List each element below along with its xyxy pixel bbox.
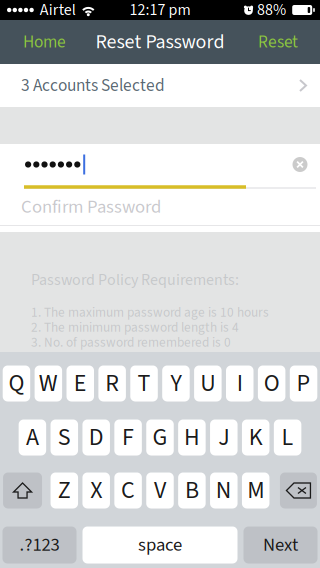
- button[interactable]: U: [194, 365, 222, 401]
- staticText: K: [249, 420, 263, 455]
- button[interactable]: Next: [243, 526, 317, 563]
- staticText: M: [247, 473, 264, 508]
- button[interactable]: space: [82, 526, 237, 563]
- staticText: Confirm Password: [21, 194, 161, 220]
- staticText: L: [282, 420, 294, 455]
- button[interactable]: Clear password: [289, 153, 311, 175]
- staticText: Z: [58, 473, 71, 508]
- button[interactable]: Z: [51, 472, 78, 508]
- button[interactable]: V: [146, 472, 174, 508]
- button[interactable]: F: [114, 419, 142, 455]
- staticText: O: [264, 366, 280, 401]
- staticText: U: [200, 366, 215, 401]
- button[interactable]: Shift: [3, 472, 42, 508]
- staticText: 1. The maximum password age is 10 hours: [31, 303, 269, 322]
- button[interactable]: G: [146, 419, 174, 455]
- button[interactable]: E: [66, 365, 94, 401]
- button[interactable]: P: [290, 365, 317, 401]
- button[interactable]: Q: [3, 365, 30, 401]
- button[interactable]: M: [242, 472, 269, 508]
- button[interactable]: A: [19, 419, 46, 455]
- button[interactable]: T: [130, 365, 158, 401]
- staticText: 12:17 pm: [129, 0, 190, 21]
- button[interactable]: Y: [162, 365, 190, 401]
- staticText: T: [137, 366, 150, 401]
- staticText: Home: [23, 30, 66, 54]
- staticText: Reset Password: [95, 28, 224, 56]
- staticText: F: [122, 420, 134, 455]
- button[interactable]: L: [274, 419, 301, 455]
- staticText: space: [138, 532, 182, 558]
- button[interactable]: K: [242, 419, 269, 455]
- button[interactable]: Reset: [246, 20, 320, 64]
- button[interactable]: 3 Accounts Selected: [0, 64, 320, 107]
- staticText: W: [39, 366, 58, 401]
- staticText: 88%: [254, 0, 292, 21]
- staticText: S: [58, 420, 71, 455]
- button[interactable]: I: [226, 365, 253, 401]
- button[interactable]: C: [114, 472, 142, 508]
- button[interactable]: B: [178, 472, 206, 508]
- button[interactable]: Delete: [280, 472, 317, 508]
- staticText: B: [185, 473, 199, 508]
- button[interactable]: W: [35, 365, 62, 401]
- staticText: X: [90, 473, 102, 508]
- staticText: Airtel: [34, 0, 82, 21]
- staticText: 2. The minimum password length is 4: [31, 318, 239, 337]
- staticText: R: [105, 366, 119, 401]
- staticText: Y: [170, 366, 181, 401]
- staticText: J: [218, 420, 229, 455]
- staticText: Password Policy Requirements:: [31, 269, 239, 291]
- staticText: I: [237, 366, 243, 401]
- staticText: Q: [8, 366, 24, 401]
- staticText: D: [89, 420, 104, 455]
- staticText: G: [152, 420, 167, 455]
- staticText: P: [297, 366, 311, 401]
- button[interactable]: X: [82, 472, 110, 508]
- staticText: E: [74, 366, 87, 401]
- staticText: A: [26, 420, 39, 455]
- staticText: Next: [263, 532, 298, 558]
- button[interactable]: S: [51, 419, 78, 455]
- button[interactable]: R: [98, 365, 126, 401]
- staticText: H: [184, 420, 200, 455]
- staticText: 3 Accounts Selected: [21, 73, 165, 98]
- button[interactable]: .?123: [2, 526, 76, 563]
- staticText: N: [216, 473, 232, 508]
- staticText: V: [154, 473, 166, 508]
- button[interactable]: J: [210, 419, 238, 455]
- button[interactable]: Home: [0, 20, 78, 64]
- button[interactable]: H: [178, 419, 206, 455]
- staticText: 3. No. of password remembered is 0: [31, 333, 231, 352]
- button[interactable]: O: [258, 365, 285, 401]
- staticText: C: [121, 473, 135, 508]
- staticText: .?123: [19, 532, 59, 558]
- button[interactable]: N: [210, 472, 238, 508]
- button[interactable]: D: [82, 419, 110, 455]
- staticText: Reset: [258, 30, 298, 54]
